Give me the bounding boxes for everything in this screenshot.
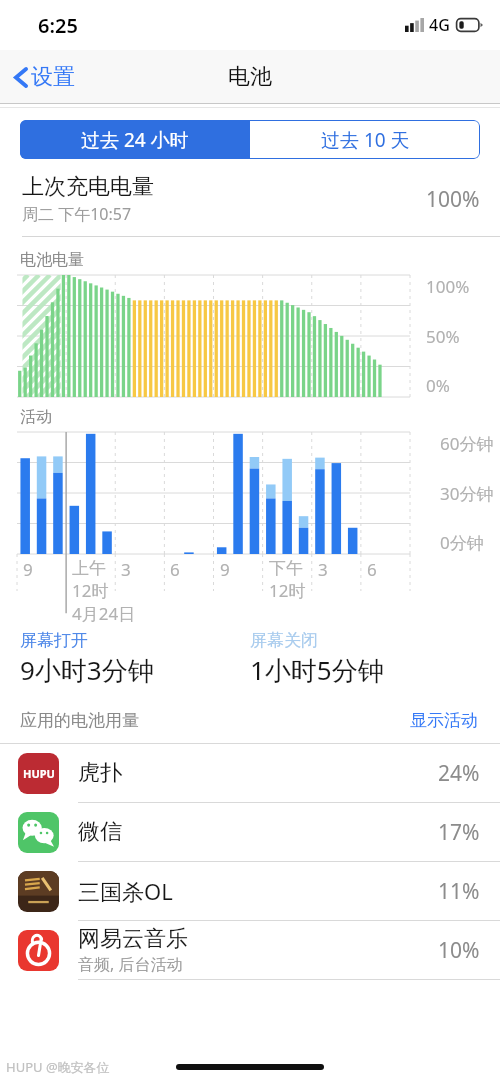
staticText: 音频, 后台活动 xyxy=(78,953,183,975)
staticText: 活动 xyxy=(20,407,52,427)
staticText: 60分钟 xyxy=(440,432,494,455)
staticText: 17% xyxy=(438,818,480,847)
staticText: 0分钟 xyxy=(440,531,484,554)
staticText: 网易云音乐 xyxy=(78,925,188,953)
staticText: 上午 xyxy=(72,558,106,579)
staticText: HUPU xyxy=(23,766,55,781)
staticText: 9 xyxy=(220,558,230,581)
other: Cellular signal xyxy=(405,18,424,32)
staticText: 12时 xyxy=(72,579,109,602)
staticText: 3 xyxy=(121,558,131,581)
staticText: 3 xyxy=(318,558,328,581)
staticText: 周二 下午10:57 xyxy=(22,203,132,225)
staticText: 24% xyxy=(438,759,480,788)
staticText: 屏幕关闭 xyxy=(250,630,318,651)
staticText: 6 xyxy=(367,558,377,581)
staticText: 显示活动 xyxy=(410,710,478,731)
button[interactable]: 过去 24 小时 xyxy=(20,120,250,159)
staticText: 9小时3分钟 xyxy=(20,652,154,688)
staticText: 下午 xyxy=(269,558,303,579)
staticText: 4G xyxy=(429,14,450,36)
button[interactable]: 过去 10 天 xyxy=(250,120,480,159)
button[interactable]: 上次充电电量 xyxy=(0,168,500,236)
staticText: 4月24日 xyxy=(72,602,136,625)
staticText: 100% xyxy=(426,275,470,298)
staticText: 过去 10 天 xyxy=(321,127,410,153)
button[interactable]: 微信 xyxy=(0,803,500,861)
staticText: 应用的电池用量 xyxy=(20,710,408,731)
staticText: 100% xyxy=(426,185,480,214)
staticText: 30分钟 xyxy=(440,482,494,505)
staticText: 三国杀OL xyxy=(78,876,173,906)
staticText: 电池电量 xyxy=(20,250,84,270)
staticText: 6 xyxy=(170,558,180,581)
other: Battery xyxy=(456,18,483,32)
staticText: 电池 xyxy=(228,63,272,91)
button[interactable]: 网易云音乐 xyxy=(0,921,500,979)
staticText: HUPU @晚安各位 xyxy=(6,1058,110,1076)
button[interactable]: 显示活动 xyxy=(408,708,480,733)
staticText: 设置 xyxy=(31,63,75,91)
staticText: 过去 24 小时 xyxy=(81,127,189,153)
staticText: 10% xyxy=(438,936,480,965)
staticText: 6:25 xyxy=(38,12,78,39)
staticText: 0% xyxy=(426,374,450,397)
button[interactable]: 三国杀OL xyxy=(0,862,500,920)
staticText: 上次充电电量 xyxy=(22,173,154,201)
staticText: 1小时5分钟 xyxy=(250,652,384,688)
staticText: 12时 xyxy=(269,579,306,602)
button[interactable]: HUPU xyxy=(0,744,500,802)
staticText: 虎扑 xyxy=(78,759,122,787)
staticText: 微信 xyxy=(78,818,122,846)
staticText: 50% xyxy=(426,325,460,348)
staticText: 11% xyxy=(438,877,480,906)
staticText: 屏幕打开 xyxy=(20,630,88,651)
button[interactable]: 设置 xyxy=(9,56,80,98)
staticText: 9 xyxy=(23,558,33,581)
